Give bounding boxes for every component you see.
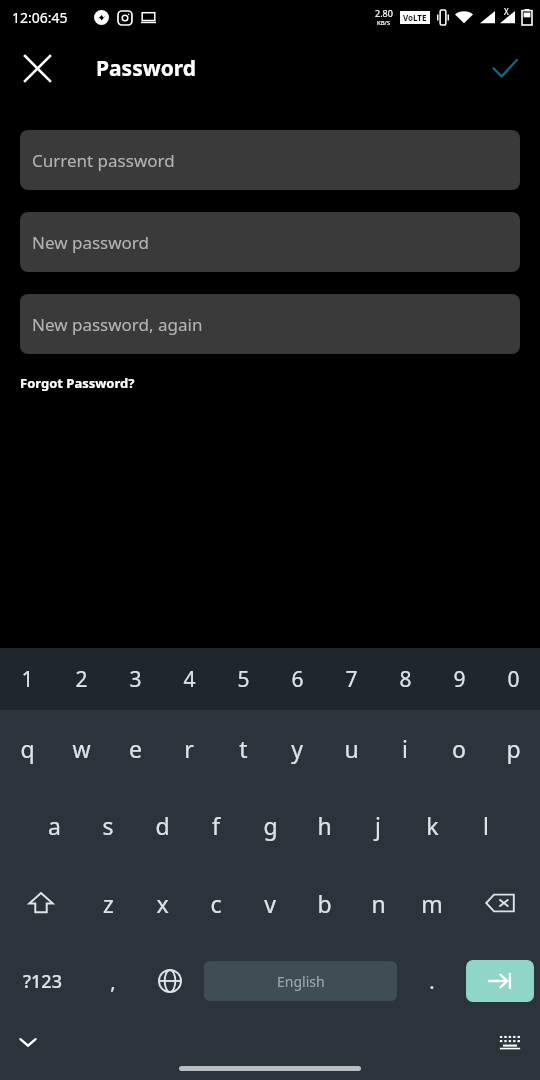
button[interactable]: n: [351, 864, 405, 942]
button[interactable]: 0: [486, 648, 540, 710]
staticText: 4: [183, 665, 196, 694]
staticText: k: [426, 810, 439, 841]
staticText: b: [317, 888, 332, 919]
button[interactable]: b: [297, 864, 351, 942]
button[interactable]: 6: [270, 648, 324, 710]
button[interactable]: j: [351, 786, 405, 864]
staticText: r: [184, 733, 194, 764]
staticText: 9: [453, 665, 466, 694]
staticText: KB/S: [377, 19, 391, 27]
button[interactable]: i: [378, 710, 432, 786]
staticText: VoLTE: [403, 12, 427, 23]
staticText: X: [504, 6, 509, 17]
staticText: e: [129, 733, 142, 764]
staticText: 7: [345, 665, 358, 694]
button[interactable]: 7: [324, 648, 378, 710]
staticText: 3: [129, 665, 142, 694]
staticText: Password: [96, 54, 197, 83]
button[interactable]: Hide keyboard: [6, 1020, 50, 1064]
staticText: m: [421, 888, 443, 919]
staticText: v: [264, 888, 276, 919]
staticText: .: [429, 968, 435, 995]
staticText: n: [371, 888, 386, 919]
staticText: c: [210, 888, 222, 919]
staticText: ?123: [23, 969, 62, 994]
staticText: o: [452, 733, 466, 764]
button[interactable]: t: [216, 710, 270, 786]
staticText: 1: [21, 665, 34, 694]
button[interactable]: d: [135, 786, 189, 864]
staticText: New password: [32, 231, 150, 254]
button[interactable]: 2: [54, 648, 108, 710]
button[interactable]: .: [403, 942, 460, 1020]
button[interactable]: y: [270, 710, 324, 786]
button[interactable]: Save: [478, 41, 532, 95]
staticText: New password, again: [32, 313, 203, 336]
button[interactable]: ?123: [0, 942, 84, 1020]
button[interactable]: Change language: [141, 942, 198, 1020]
button[interactable]: q: [0, 710, 54, 786]
staticText: p: [506, 733, 521, 764]
staticText: i: [402, 733, 408, 764]
button[interactable]: e: [108, 710, 162, 786]
button[interactable]: r: [162, 710, 216, 786]
button[interactable]: o: [432, 710, 486, 786]
staticText: Forgot Password?: [20, 374, 135, 392]
button[interactable]: Forgot Password?: [20, 372, 135, 394]
staticText: ,: [110, 968, 116, 995]
button[interactable]: w: [54, 710, 108, 786]
staticText: English: [277, 972, 325, 991]
button[interactable]: v: [243, 864, 297, 942]
button[interactable]: z: [81, 864, 135, 942]
button[interactable]: 8: [378, 648, 432, 710]
staticText: t: [239, 733, 248, 764]
button[interactable]: 3: [108, 648, 162, 710]
button[interactable]: English: [204, 961, 397, 1001]
staticText: y: [291, 733, 303, 764]
staticText: Current password: [32, 149, 175, 172]
button[interactable]: s: [81, 786, 135, 864]
button[interactable]: ,: [84, 942, 141, 1020]
button[interactable]: Current password: [20, 130, 520, 190]
button[interactable]: f: [189, 786, 243, 864]
button[interactable]: 1: [0, 648, 54, 710]
button[interactable]: c: [189, 864, 243, 942]
staticText: 0: [507, 665, 520, 694]
button[interactable]: Close: [14, 45, 60, 91]
button[interactable]: New password: [20, 212, 520, 272]
staticText: w: [72, 733, 91, 764]
button[interactable]: 4: [162, 648, 216, 710]
staticText: 2: [75, 665, 88, 694]
staticText: x: [156, 888, 169, 919]
staticText: l: [483, 810, 489, 841]
button[interactable]: Switch keyboard: [488, 1020, 532, 1064]
staticText: g: [263, 810, 278, 841]
button[interactable]: 5: [216, 648, 270, 710]
staticText: 2.80: [375, 7, 393, 19]
button[interactable]: l: [459, 786, 513, 864]
staticText: d: [155, 810, 170, 841]
staticText: s: [102, 810, 114, 841]
staticText: q: [20, 733, 35, 764]
staticText: 5: [237, 665, 250, 694]
staticText: 12:06:45: [12, 8, 68, 27]
staticText: z: [103, 888, 114, 919]
button[interactable]: h: [297, 786, 351, 864]
staticText: u: [344, 733, 359, 764]
button[interactable]: Shift: [0, 864, 81, 942]
button[interactable]: New password, again: [20, 294, 520, 354]
button[interactable]: g: [243, 786, 297, 864]
staticText: a: [48, 810, 61, 841]
button[interactable]: p: [486, 710, 540, 786]
button[interactable]: Next: [466, 960, 534, 1002]
button[interactable]: x: [135, 864, 189, 942]
staticText: h: [317, 810, 332, 841]
staticText: 8: [399, 665, 412, 694]
button[interactable]: a: [27, 786, 81, 864]
button[interactable]: k: [405, 786, 459, 864]
button[interactable]: Backspace: [459, 864, 540, 942]
button[interactable]: 9: [432, 648, 486, 710]
button[interactable]: u: [324, 710, 378, 786]
staticText: 6: [291, 665, 304, 694]
button[interactable]: m: [405, 864, 459, 942]
